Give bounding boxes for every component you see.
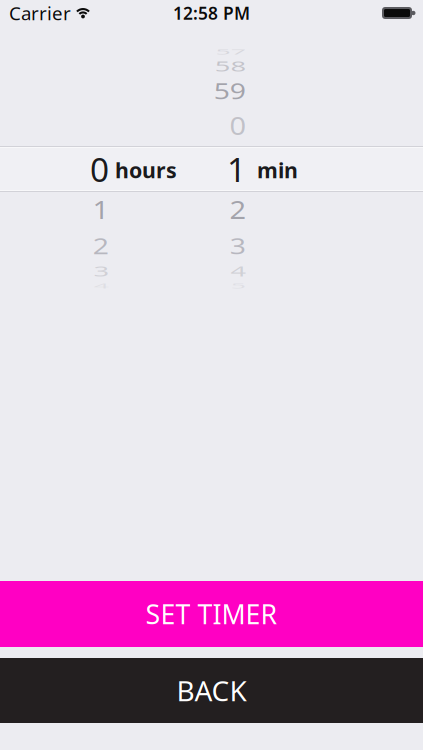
staticText: 4: [227, 249, 246, 293]
button[interactable]: BACK: [0, 658, 423, 723]
staticText: Carrier: [9, 1, 71, 25]
staticText: hours: [115, 156, 177, 184]
staticText: 2: [227, 187, 246, 231]
staticText: 58: [208, 44, 246, 88]
staticText: 0: [90, 147, 109, 191]
staticText: 2: [90, 224, 109, 268]
staticText: 1: [227, 147, 246, 191]
staticText: 57: [208, 30, 246, 74]
staticText: min: [257, 156, 298, 184]
staticText: 0: [227, 103, 246, 147]
staticText: 5: [227, 264, 246, 308]
staticText: 59: [208, 69, 246, 113]
staticText: 3: [227, 224, 246, 268]
button[interactable]: SET TIMER: [0, 581, 423, 647]
staticText: 3: [90, 249, 109, 293]
staticText: BACK: [176, 672, 246, 709]
staticText: 12:58 PM: [173, 1, 250, 24]
staticText: SET TIMER: [145, 596, 277, 632]
staticText: 1: [90, 187, 109, 231]
staticText: 4: [90, 264, 109, 308]
